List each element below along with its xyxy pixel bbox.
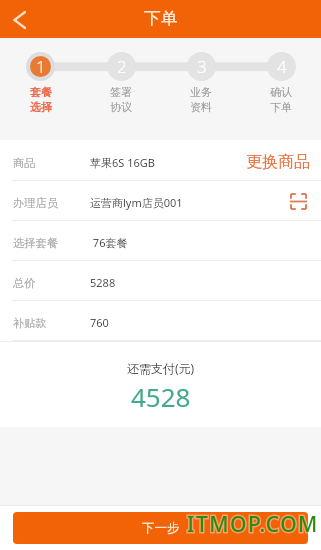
button[interactable]: 更换商品: [246, 152, 321, 172]
staticText: 选择: [30, 100, 52, 114]
staticText: ITMOP.COM: [187, 510, 319, 539]
button[interactable]: 选择套餐: [0, 221, 321, 261]
button[interactable]: 办理店员: [0, 181, 321, 221]
button[interactable]: 商品: [0, 141, 321, 181]
button[interactable]: 下一步: [13, 512, 308, 544]
staticText: 业务: [190, 85, 212, 99]
staticText: 确认: [270, 85, 292, 99]
staticText: 760: [90, 315, 321, 330]
staticText: 签署: [110, 85, 132, 99]
staticText: 3: [197, 55, 207, 78]
button[interactable]: Back: [0, 0, 38, 38]
staticText: 办理店员: [13, 196, 90, 210]
staticText: 4: [277, 55, 287, 78]
staticText: 资料: [190, 100, 212, 114]
button[interactable]: 总价: [0, 261, 321, 301]
button[interactable]: 3: [161, 38, 241, 140]
staticText: 2: [117, 55, 127, 78]
staticText: 1: [36, 55, 46, 78]
staticText: 下单: [144, 8, 178, 29]
staticText: 总价: [13, 276, 90, 290]
staticText: 选择套餐: [13, 236, 90, 250]
staticText: 还需支付(元): [127, 360, 195, 376]
staticText: 下单: [270, 100, 292, 114]
staticText: 更换商品: [246, 152, 310, 172]
staticText: 下一步: [142, 520, 180, 536]
staticText: 补贴款: [13, 316, 90, 330]
button[interactable]: 1: [0, 38, 81, 140]
button[interactable]: 4: [241, 38, 321, 140]
button[interactable]: 补贴款: [0, 301, 321, 341]
button[interactable]: Scan barcode: [290, 193, 307, 210]
staticText: ITMOP.COM: [187, 510, 319, 539]
staticText: 76套餐: [90, 235, 321, 250]
staticText: 商品: [13, 156, 90, 170]
staticText: 苹果6S 16GB: [90, 155, 246, 170]
button[interactable]: 2: [81, 38, 161, 140]
staticText: 4528: [131, 379, 191, 414]
staticText: 套餐: [30, 85, 52, 99]
staticText: 协议: [110, 100, 132, 114]
staticText: 运营商lym店员001: [90, 195, 290, 210]
staticText: 5288: [90, 275, 321, 290]
